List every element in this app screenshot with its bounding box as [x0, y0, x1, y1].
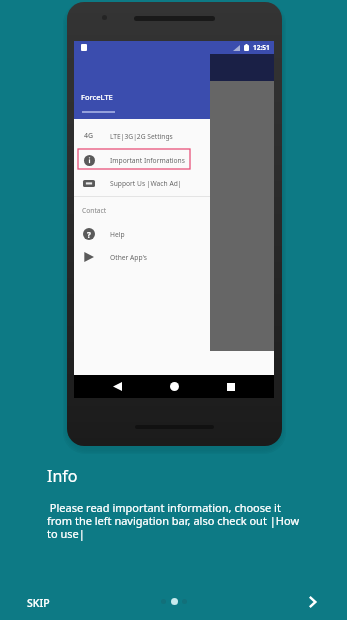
staticText: ?	[87, 229, 91, 240]
staticText: ForceLTE	[81, 92, 113, 102]
staticText: Please read important information, choos…	[47, 500, 305, 541]
button[interactable]: Next	[300, 590, 324, 614]
staticText: Important Informations	[110, 156, 185, 165]
staticText: Info	[47, 465, 78, 487]
staticText: LTE|3G|2G Settings	[110, 132, 173, 141]
staticText: Other App's	[110, 253, 147, 262]
staticText: Contact	[82, 206, 107, 215]
staticText: 4G	[84, 131, 94, 141]
button[interactable]: Other App's	[74, 246, 210, 268]
staticText: Help	[110, 230, 125, 239]
button[interactable]: Back	[113, 382, 122, 391]
staticText: SKIP	[27, 596, 50, 610]
button[interactable]: 4G	[74, 125, 210, 147]
button[interactable]: Support Us |Wach Ad|	[74, 172, 210, 194]
staticText: Support Us |Wach Ad|	[110, 179, 182, 188]
staticText: 12:51	[253, 43, 270, 52]
button[interactable]: Important Informations	[74, 149, 210, 171]
button[interactable]: Home	[170, 382, 179, 391]
button[interactable]: ?	[74, 223, 210, 245]
button[interactable]: SKIP	[17, 589, 60, 617]
